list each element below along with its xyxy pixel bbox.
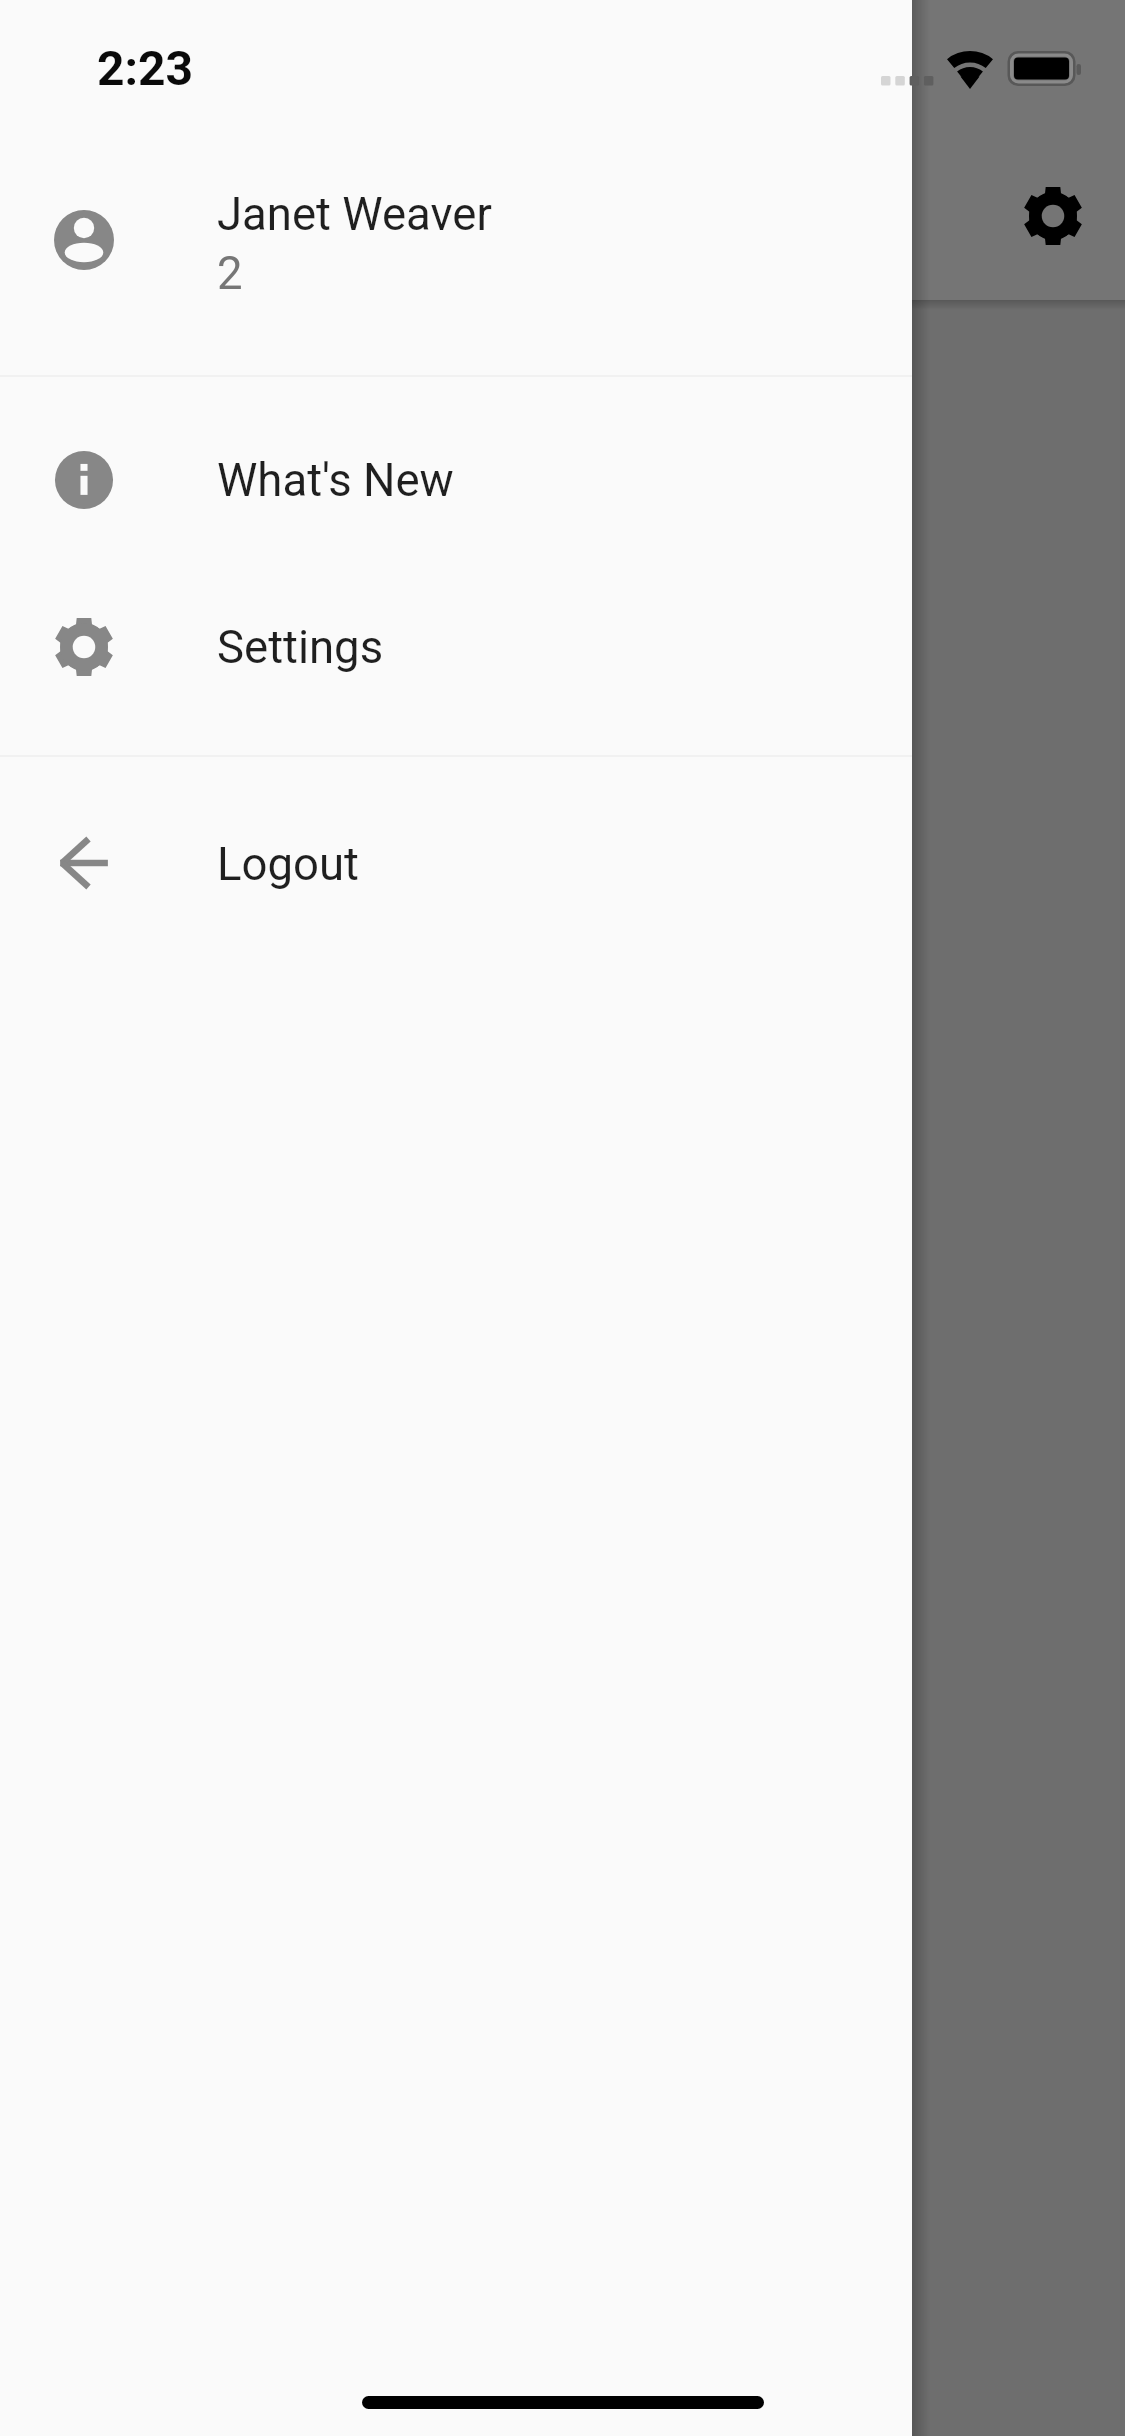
button[interactable]: Settings [0,563,912,731]
staticText: Logout [217,838,359,891]
staticText: 2:23 [97,40,194,96]
staticText: Janet Weaver [217,188,492,241]
button[interactable]: Logout [0,779,912,947]
button[interactable]: Janet Weaver [0,150,912,371]
button[interactable]: Settings [997,160,1109,272]
staticText: 2 [217,247,243,300]
staticText: What's New [217,454,454,507]
button[interactable]: What's New [0,396,912,564]
staticText: Settings [217,621,384,674]
